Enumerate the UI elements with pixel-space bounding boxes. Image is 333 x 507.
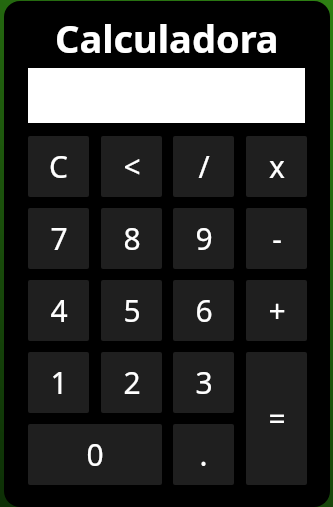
button[interactable]: 3	[173, 352, 234, 413]
button[interactable]: 2	[101, 352, 162, 413]
button[interactable]: C	[28, 136, 89, 197]
staticText: .	[199, 434, 208, 475]
staticText: 7	[50, 218, 68, 259]
button[interactable]: 0	[28, 424, 162, 485]
staticText: 1	[50, 362, 68, 403]
staticText: 2	[123, 362, 141, 403]
staticText: 4	[50, 290, 68, 331]
button[interactable]: 6	[173, 280, 234, 341]
button[interactable]: -	[246, 208, 307, 269]
staticText: +	[268, 290, 286, 331]
button[interactable]: 7	[28, 208, 89, 269]
button[interactable]: <	[101, 136, 162, 197]
button[interactable]: 5	[101, 280, 162, 341]
button[interactable]: /	[173, 136, 234, 197]
staticText: /	[198, 146, 210, 187]
staticText: x	[269, 146, 285, 187]
staticText: 0	[86, 434, 104, 475]
staticText: <	[123, 146, 141, 187]
button[interactable]: +	[246, 280, 307, 341]
button[interactable]: 1	[28, 352, 89, 413]
button[interactable]: x	[246, 136, 307, 197]
staticText: C	[49, 146, 68, 187]
staticText: =	[268, 398, 286, 439]
staticText: 3	[195, 362, 213, 403]
button[interactable]: =	[246, 352, 307, 485]
staticText: -	[272, 218, 282, 259]
staticText: 8	[123, 218, 141, 259]
staticText: 9	[195, 218, 213, 259]
button[interactable]: 8	[101, 208, 162, 269]
staticText: Calculadora	[55, 12, 279, 60]
button[interactable]: .	[173, 424, 234, 485]
staticText: 5	[123, 290, 141, 331]
staticText: 6	[195, 290, 213, 331]
button[interactable]: 4	[28, 280, 89, 341]
button[interactable]: 9	[173, 208, 234, 269]
